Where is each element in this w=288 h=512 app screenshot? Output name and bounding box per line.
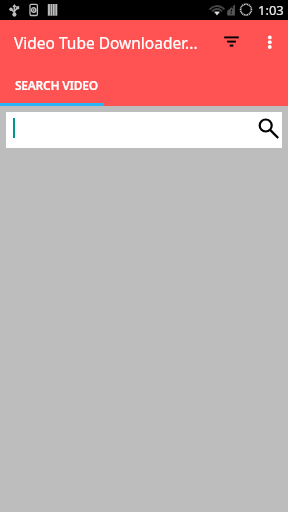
- button[interactable]: Search: [250, 114, 282, 146]
- staticText: 1:03: [258, 1, 284, 19]
- staticText: SEARCH VIDEO: [15, 77, 98, 93]
- button[interactable]: More options: [252, 24, 286, 58]
- button[interactable]: SEARCH VIDEO: [0, 62, 104, 106]
- button[interactable]: Filter: [214, 24, 248, 58]
- button[interactable]: Search field: [6, 112, 282, 148]
- staticText: Video Tube Downloader...: [14, 32, 198, 53]
